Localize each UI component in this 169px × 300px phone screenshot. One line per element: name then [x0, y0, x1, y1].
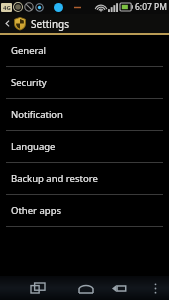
button[interactable]: Back	[109, 278, 129, 298]
staticText: Notification	[11, 108, 63, 121]
button[interactable]: Language	[0, 131, 169, 163]
staticText: Security	[11, 76, 47, 89]
button[interactable]: Other apps	[0, 195, 169, 227]
staticText: Backup and restore	[11, 172, 98, 185]
button[interactable]: Recent apps	[28, 278, 48, 298]
staticText: Language	[11, 140, 56, 153]
staticText: 4G	[3, 4, 11, 12]
button[interactable]: Notification	[0, 99, 169, 131]
button[interactable]: Back	[0, 14, 169, 33]
staticText: Other apps	[11, 204, 62, 217]
staticText: Settings	[31, 17, 70, 31]
button[interactable]: Security	[0, 67, 169, 99]
button[interactable]: General	[0, 35, 169, 67]
button[interactable]: Backup and restore	[0, 163, 169, 195]
staticText: General	[11, 44, 47, 57]
staticText: 6:07 PM	[135, 1, 167, 13]
button[interactable]: Home	[76, 278, 96, 298]
button[interactable]: Back	[3, 19, 12, 28]
button[interactable]: More options	[147, 280, 163, 296]
